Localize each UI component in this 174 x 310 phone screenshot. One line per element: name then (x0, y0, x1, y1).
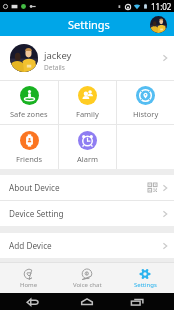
button[interactable]: Alarm (59, 125, 116, 169)
button[interactable]: Device Setting (0, 201, 174, 226)
staticText: Device Setting (9, 208, 64, 219)
button[interactable]: Back (26, 295, 40, 309)
button[interactable]: jackey (0, 36, 174, 80)
button[interactable]: Home (80, 295, 94, 309)
button[interactable]: Voice chat (58, 263, 116, 293)
button[interactable]: Home (0, 263, 58, 293)
other: Family (78, 86, 97, 105)
other: Safe zones (20, 86, 39, 105)
other: History (136, 86, 155, 105)
button[interactable]: History (117, 81, 174, 124)
staticText: Voice chat (73, 281, 102, 289)
staticText: Home (20, 281, 38, 289)
button[interactable]: Add Device (0, 233, 174, 258)
staticText: Add Device (9, 240, 52, 251)
button[interactable]: Recent apps (130, 295, 144, 309)
other: Friends (20, 131, 39, 150)
button[interactable]: About Device (0, 175, 174, 200)
staticText: Settings (134, 281, 157, 289)
staticText: Family (76, 109, 99, 119)
staticText: Details (44, 63, 65, 72)
staticText: jackey (44, 49, 72, 62)
staticText: Alarm (77, 154, 99, 164)
button[interactable]: Safe zones (0, 81, 58, 124)
staticText: 11:02 (151, 1, 172, 12)
staticText: Friends (16, 154, 42, 164)
button[interactable]: Friends (0, 125, 58, 169)
button[interactable]: Profile photo (150, 16, 167, 33)
staticText: History (133, 109, 159, 119)
button[interactable]: Settings (116, 263, 174, 293)
other: Alarm (78, 131, 97, 150)
staticText: Settings (68, 17, 110, 32)
staticText: Safe zones (10, 109, 48, 119)
button[interactable]: Family (59, 81, 116, 124)
other: Scan QR code (148, 183, 157, 192)
staticText: About Device (9, 182, 60, 193)
